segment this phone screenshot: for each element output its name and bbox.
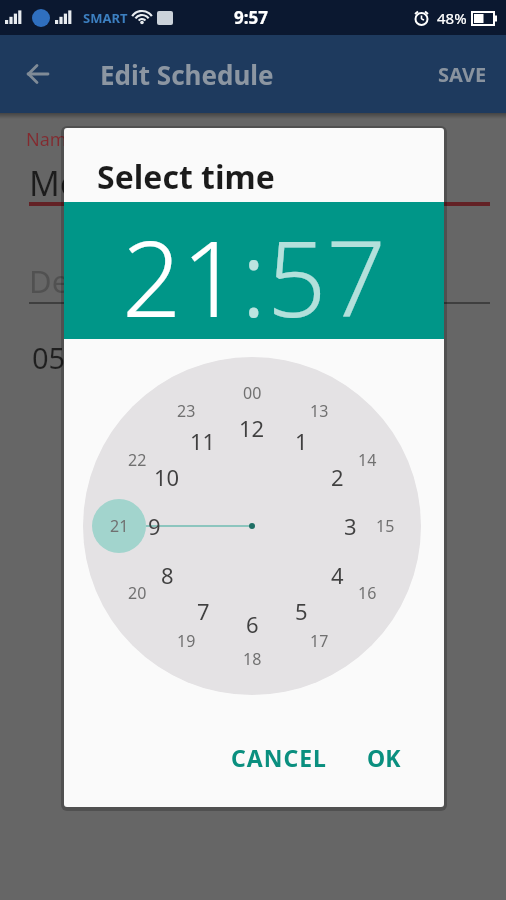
staticText: 15 bbox=[376, 515, 395, 537]
staticText: OK bbox=[367, 742, 401, 773]
staticText: : bbox=[241, 206, 267, 339]
staticText: 10 bbox=[154, 462, 180, 492]
staticText: 9 bbox=[148, 511, 161, 541]
button[interactable]: SAVE bbox=[419, 45, 506, 104]
button[interactable] bbox=[11, 47, 65, 101]
staticText: 5 bbox=[295, 596, 308, 626]
staticText: Edit Schedule bbox=[100, 57, 274, 92]
staticText: 17 bbox=[310, 630, 329, 652]
staticText: 19 bbox=[177, 630, 196, 652]
staticText: 23 bbox=[177, 400, 196, 422]
staticText: 6 bbox=[246, 609, 259, 639]
staticText: 3 bbox=[344, 511, 357, 541]
button[interactable]: CANCEL bbox=[225, 736, 333, 779]
staticText: 00 bbox=[243, 382, 262, 404]
button[interactable]: 21 bbox=[122, 206, 241, 339]
button[interactable]: 57 bbox=[267, 206, 386, 339]
staticText: 12 bbox=[239, 413, 265, 443]
staticText: SMART bbox=[83, 9, 128, 27]
staticText: 48% bbox=[437, 8, 467, 28]
staticText: 16 bbox=[358, 582, 377, 604]
staticText: 22 bbox=[128, 449, 147, 471]
staticText: SAVE bbox=[438, 61, 487, 88]
staticText: 14 bbox=[358, 449, 377, 471]
staticText: 13 bbox=[310, 400, 329, 422]
staticText: CANCEL bbox=[231, 742, 327, 773]
staticText: 9:57 bbox=[234, 6, 268, 29]
staticText: Name bbox=[26, 127, 77, 152]
staticText: 18 bbox=[243, 648, 262, 670]
staticText: 7 bbox=[197, 596, 210, 626]
staticText: Mo bbox=[29, 160, 81, 206]
staticText: De bbox=[29, 260, 70, 302]
staticText: 4 bbox=[331, 560, 344, 590]
staticText: 21 bbox=[110, 515, 129, 537]
staticText: 2 bbox=[331, 462, 344, 492]
button[interactable]: OK bbox=[361, 736, 407, 779]
staticText: 20 bbox=[128, 582, 147, 604]
staticText: Select time bbox=[97, 155, 275, 199]
staticText: 11 bbox=[190, 426, 216, 456]
staticText: 8 bbox=[161, 560, 174, 590]
staticText: 05 bbox=[32, 338, 66, 377]
staticText: 1 bbox=[295, 426, 308, 456]
